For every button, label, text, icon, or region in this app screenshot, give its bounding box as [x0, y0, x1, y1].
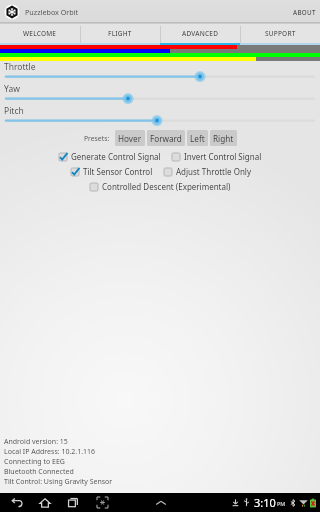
button[interactable]: Expand notifications [151, 493, 170, 512]
button[interactable]: Home [35, 493, 54, 512]
button[interactable]: Invert Control Signal [170, 151, 263, 162]
staticText: Tilt Control: Using Gravity Sensor [4, 477, 113, 487]
staticText: Android version: 15 [4, 437, 68, 447]
staticText: WELCOME [23, 29, 57, 38]
button[interactable]: Back [7, 493, 26, 512]
staticText: Adjust Throttle Only [176, 166, 251, 177]
button[interactable]: Forward [147, 130, 185, 146]
button[interactable]: Generate Control Signal [57, 151, 162, 162]
staticText: Connecting to EEG [4, 457, 65, 467]
staticText: Yaw [4, 83, 20, 95]
button[interactable]: Recents [64, 493, 83, 512]
button[interactable]: WELCOME [0, 24, 80, 45]
staticText: Generate Control Signal [71, 151, 161, 162]
staticText: Forward [150, 133, 182, 144]
staticText: Presets: [84, 134, 110, 143]
button[interactable]: Hover [115, 130, 145, 146]
staticText: Tilt Sensor Control [83, 166, 153, 177]
staticText: Controlled Descent (Experimental) [102, 181, 231, 192]
staticText: Puzzlebox Orbit [25, 7, 79, 17]
button[interactable]: Adjust Throttle Only [162, 166, 252, 177]
staticText: SUPPORT [265, 29, 296, 38]
staticText: Local IP Address: 10.2.1.116 [4, 447, 96, 457]
staticText: Right [213, 133, 234, 144]
button[interactable]: Tilt Sensor Control [69, 166, 154, 177]
staticText: PM [277, 500, 286, 507]
staticText: Bluetooth Connected [4, 467, 74, 477]
button[interactable]: FLIGHT [80, 24, 160, 45]
staticText: 3:10 [254, 495, 276, 510]
staticText: Invert Control Signal [184, 151, 262, 162]
staticText: FLIGHT [108, 29, 132, 38]
staticText: ADVANCED [182, 29, 219, 38]
button[interactable]: Left [187, 130, 208, 146]
button[interactable]: ABOUT [284, 0, 320, 24]
staticText: Hover [118, 133, 142, 144]
button[interactable]: SUPPORT [240, 24, 320, 45]
staticText: Pitch [4, 105, 24, 117]
staticText: Throttle [4, 61, 36, 73]
button[interactable]: ADVANCED [160, 24, 240, 45]
staticText: ABOUT [293, 8, 316, 17]
staticText: Left [190, 133, 205, 144]
button[interactable]: Right [210, 130, 237, 146]
button[interactable]: Controlled Descent (Experimental) [88, 181, 232, 192]
button[interactable]: Screenshot [93, 493, 112, 512]
